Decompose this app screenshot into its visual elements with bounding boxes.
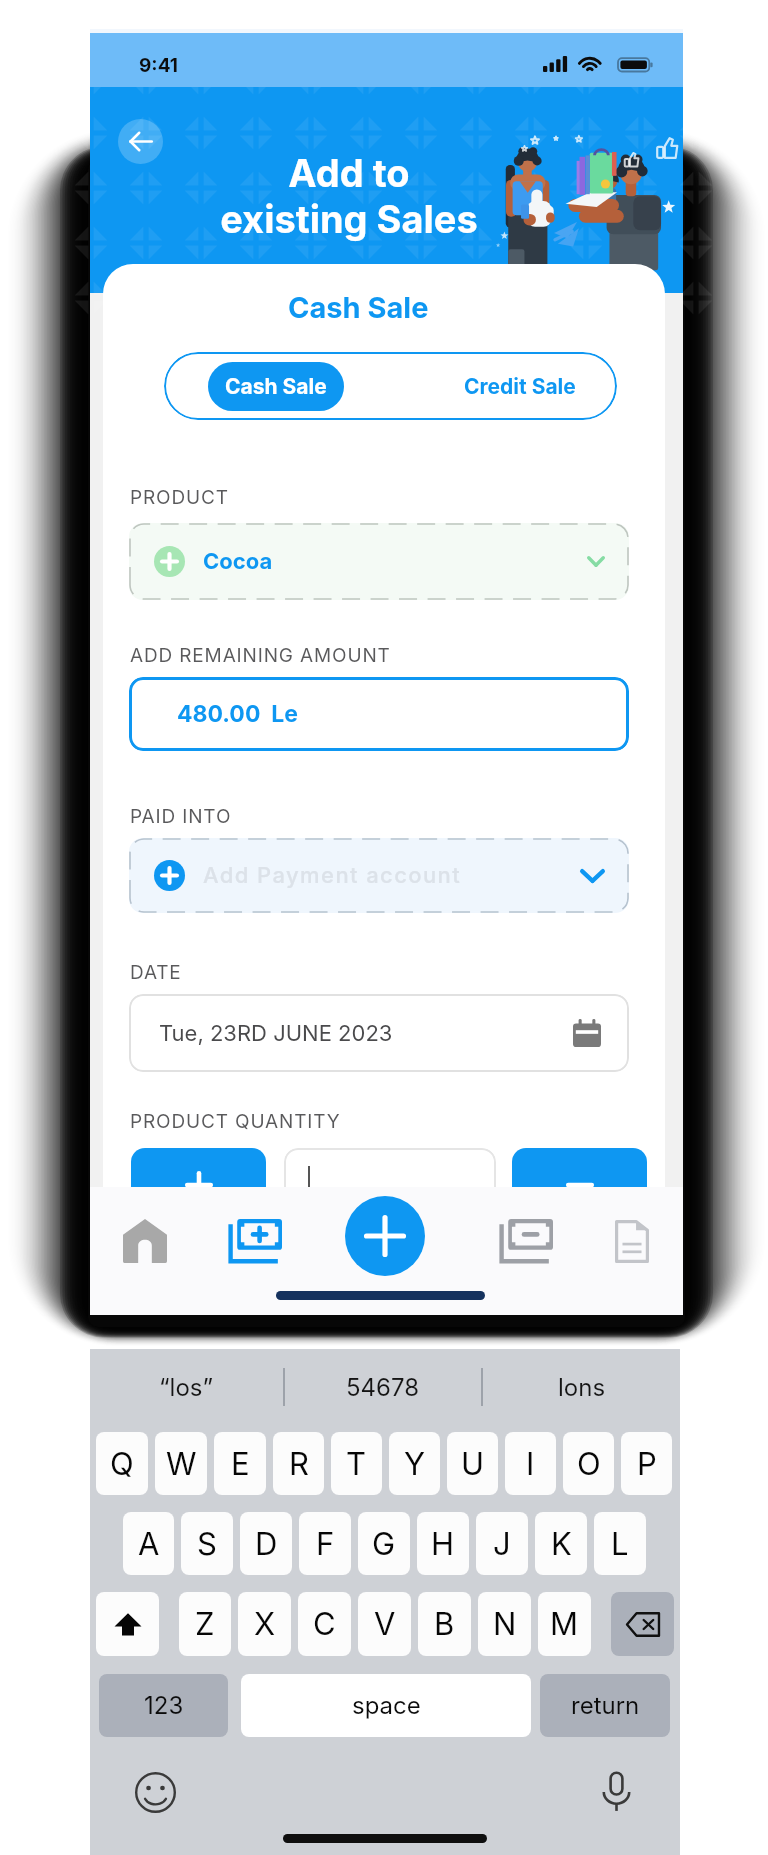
staticText: I bbox=[526, 1445, 535, 1483]
button[interactable]: Reports bbox=[580, 1187, 683, 1295]
button[interactable]: Shift bbox=[96, 1592, 159, 1656]
button[interactable]: S bbox=[181, 1512, 233, 1575]
button[interactable]: Emoji keyboard bbox=[132, 1769, 178, 1815]
staticText: Add Payment account bbox=[203, 862, 462, 889]
button[interactable]: Add transaction bbox=[345, 1196, 425, 1276]
button[interactable]: Back bbox=[118, 119, 163, 164]
button[interactable]: D bbox=[240, 1512, 292, 1575]
button[interactable]: N bbox=[478, 1592, 531, 1656]
button[interactable]: X bbox=[238, 1592, 291, 1656]
button[interactable]: Tue, 23RD JUNE 2023 bbox=[129, 994, 629, 1072]
button[interactable]: A bbox=[123, 1512, 174, 1575]
staticText: space bbox=[352, 1691, 421, 1720]
staticText: 54678 bbox=[346, 1373, 420, 1402]
button[interactable]: I bbox=[505, 1432, 556, 1495]
button[interactable]: B bbox=[418, 1592, 471, 1656]
button[interactable]: Money in bbox=[200, 1187, 310, 1295]
button[interactable]: J bbox=[476, 1512, 528, 1575]
button[interactable]: lons bbox=[483, 1349, 680, 1425]
button[interactable]: Cocoa bbox=[129, 523, 629, 600]
button[interactable]: M bbox=[538, 1592, 591, 1656]
button[interactable]: Dictation bbox=[593, 1769, 639, 1815]
staticText: Y bbox=[404, 1445, 426, 1483]
button[interactable]: H bbox=[417, 1512, 469, 1575]
button[interactable]: R bbox=[273, 1432, 324, 1495]
button[interactable]: W bbox=[155, 1432, 207, 1495]
button[interactable]: E bbox=[214, 1432, 266, 1495]
staticText: lons bbox=[558, 1373, 606, 1402]
button[interactable] bbox=[284, 1148, 496, 1204]
staticText: U bbox=[461, 1445, 485, 1483]
staticText: A bbox=[138, 1525, 160, 1563]
staticText: “los” bbox=[159, 1373, 214, 1402]
button[interactable]: L bbox=[594, 1512, 646, 1575]
staticText: Cocoa bbox=[203, 548, 273, 575]
button[interactable]: U bbox=[447, 1432, 498, 1495]
button[interactable]: Increase quantity bbox=[131, 1148, 266, 1204]
button[interactable]: Home bbox=[90, 1187, 200, 1295]
staticText: N bbox=[493, 1605, 517, 1643]
staticText: D bbox=[255, 1525, 278, 1563]
button[interactable]: Add Payment account bbox=[129, 838, 629, 913]
button[interactable]: “los” bbox=[90, 1349, 283, 1425]
staticText: Q bbox=[110, 1445, 134, 1483]
staticText: T bbox=[346, 1445, 367, 1483]
staticText: existing Sales bbox=[160, 196, 538, 242]
button[interactable]: 123 bbox=[99, 1674, 228, 1737]
staticText: Tue, 23RD JUNE 2023 bbox=[159, 1020, 393, 1047]
button[interactable]: Decrease quantity bbox=[512, 1148, 647, 1204]
staticText: 123 bbox=[144, 1691, 184, 1720]
staticText: ADD REMAINING AMOUNT bbox=[130, 644, 391, 667]
staticText: G bbox=[372, 1525, 396, 1563]
button[interactable]: O bbox=[563, 1432, 614, 1495]
staticText: R bbox=[289, 1445, 309, 1483]
button[interactable]: P bbox=[621, 1432, 672, 1495]
staticText: 480.00 Le bbox=[177, 700, 298, 728]
staticText: E bbox=[231, 1445, 250, 1483]
staticText: W bbox=[166, 1445, 197, 1483]
staticText: PAID INTO bbox=[130, 805, 232, 828]
staticText: return bbox=[571, 1691, 640, 1720]
button[interactable]: F bbox=[299, 1512, 351, 1575]
button[interactable]: T bbox=[331, 1432, 382, 1495]
staticText: L bbox=[611, 1525, 629, 1563]
staticText: PRODUCT QUANTITY bbox=[130, 1110, 341, 1133]
button[interactable]: return bbox=[540, 1674, 670, 1737]
staticText: M bbox=[550, 1605, 579, 1643]
staticText: C bbox=[313, 1605, 336, 1643]
button[interactable]: 480.00 Le bbox=[129, 677, 629, 751]
button[interactable]: K bbox=[535, 1512, 587, 1575]
staticText: PRODUCT bbox=[130, 486, 229, 509]
staticText: Z bbox=[195, 1605, 215, 1643]
button[interactable]: Backspace bbox=[611, 1592, 674, 1656]
staticText: H bbox=[431, 1525, 455, 1563]
button[interactable]: Z bbox=[179, 1592, 231, 1656]
staticText: Credit Sale bbox=[464, 374, 576, 399]
staticText: S bbox=[197, 1525, 217, 1563]
staticText: V bbox=[374, 1605, 396, 1643]
button[interactable]: Credit Sale bbox=[462, 362, 578, 411]
staticText: B bbox=[434, 1605, 455, 1643]
staticText: P bbox=[637, 1445, 657, 1483]
button[interactable]: Money out bbox=[472, 1187, 580, 1295]
staticText: 9:41 bbox=[139, 54, 179, 77]
staticText: F bbox=[316, 1525, 335, 1563]
button[interactable]: Q bbox=[96, 1432, 148, 1495]
staticText: K bbox=[551, 1525, 572, 1563]
staticText: J bbox=[493, 1525, 511, 1563]
button[interactable]: Y bbox=[389, 1432, 440, 1495]
button[interactable]: Cash Sale bbox=[208, 362, 344, 411]
button[interactable]: V bbox=[358, 1592, 411, 1656]
staticText: DATE bbox=[130, 961, 182, 984]
staticText: O bbox=[577, 1445, 601, 1483]
staticText: Cash Sale bbox=[288, 290, 429, 325]
button[interactable]: C bbox=[298, 1592, 351, 1656]
button[interactable]: G bbox=[358, 1512, 410, 1575]
button[interactable]: 54678 bbox=[285, 1349, 481, 1425]
staticText: Cash Sale bbox=[225, 374, 327, 399]
button[interactable]: space bbox=[241, 1674, 531, 1737]
staticText: Add to bbox=[160, 150, 538, 196]
staticText: X bbox=[254, 1605, 276, 1643]
